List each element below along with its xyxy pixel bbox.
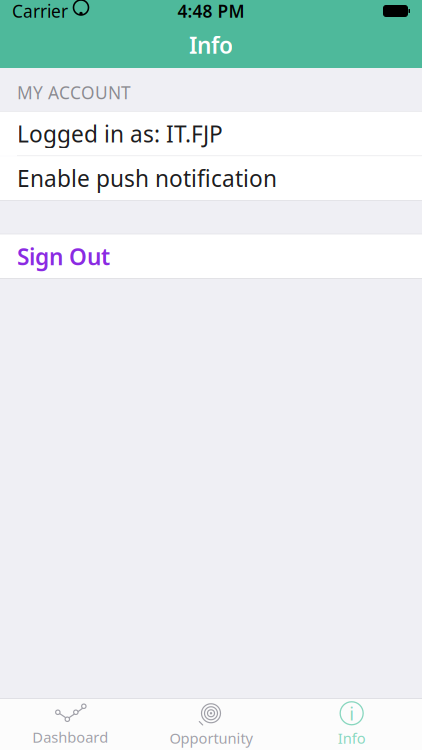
button[interactable]: Info xyxy=(281,699,422,749)
staticText: 4:48 PM xyxy=(177,0,244,22)
button[interactable]: Opportunity xyxy=(141,699,281,749)
staticText: i xyxy=(349,701,354,726)
button[interactable]: Logged in as: IT.FJP xyxy=(0,112,422,156)
staticText: Logged in as: IT.FJP xyxy=(17,118,223,149)
button[interactable]: Sign Out xyxy=(0,234,422,278)
button[interactable]: Dashboard xyxy=(0,699,141,749)
staticText: Sign Out xyxy=(17,241,110,271)
button[interactable]: Enable push notification xyxy=(0,156,422,200)
staticText: MY ACCOUNT xyxy=(17,81,131,104)
staticText: Opportunity xyxy=(169,728,252,748)
staticText: Carrier xyxy=(12,0,68,22)
staticText: Dashboard xyxy=(32,727,108,747)
staticText: Info xyxy=(338,728,366,748)
staticText: Info xyxy=(189,30,233,60)
staticText: Enable push notification xyxy=(17,163,277,193)
